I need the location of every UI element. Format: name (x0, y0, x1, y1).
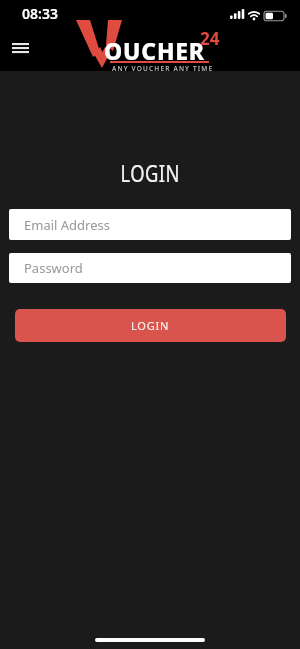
staticText: Email Address (24, 216, 110, 234)
staticText: 24 (200, 27, 220, 50)
button[interactable] (2, 36, 38, 60)
button[interactable]: Email Address (9, 209, 291, 240)
staticText: LOGIN (120, 157, 180, 188)
staticText: ANY VOUCHER ANY TIME (112, 64, 214, 73)
button[interactable]: LOGIN (15, 309, 286, 342)
staticText: Password (24, 259, 83, 277)
staticText: 08:33 (22, 4, 58, 23)
staticText: LOGIN (131, 318, 170, 333)
button[interactable]: Password (9, 253, 291, 283)
staticText: OUCHER (104, 35, 205, 66)
